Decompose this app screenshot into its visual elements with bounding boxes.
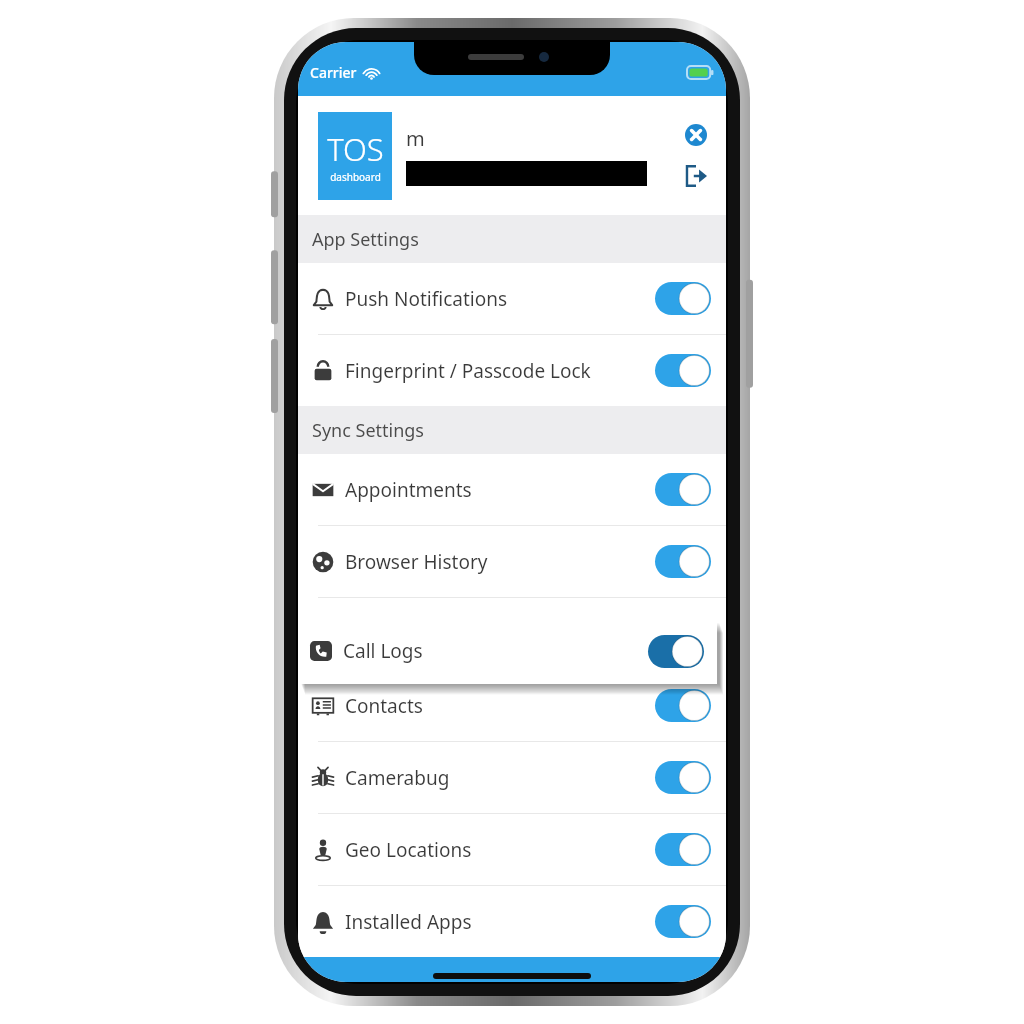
button[interactable]: Log out	[680, 160, 712, 192]
staticText: Call Logs	[343, 638, 423, 664]
staticText: Sync Settings	[312, 418, 424, 443]
button[interactable]: Toggle	[655, 354, 711, 387]
button[interactable]: Contacts	[298, 670, 726, 741]
button[interactable]: Close	[680, 119, 712, 151]
button[interactable]: Geo Locations	[298, 814, 726, 885]
button[interactable]: Push Notifications	[298, 263, 726, 334]
button[interactable]: Toggle	[655, 282, 711, 315]
staticText: Fingerprint / Passcode Lock	[345, 358, 591, 384]
staticText: dashboard	[330, 170, 381, 184]
staticText: TOS	[327, 128, 384, 170]
staticText: App Settings	[312, 227, 419, 252]
button[interactable]: Toggle	[655, 761, 711, 794]
button[interactable]: Camerabug	[298, 742, 726, 813]
button[interactable]: Toggle	[655, 545, 711, 578]
staticText: Camerabug	[345, 765, 450, 791]
button[interactable]: Toggle	[655, 689, 711, 722]
button[interactable]: Fingerprint / Passcode Lock	[298, 335, 726, 406]
staticText: Installed Apps	[345, 909, 472, 935]
button[interactable]: Appointments	[298, 454, 726, 525]
button[interactable]: Installed Apps	[298, 886, 726, 957]
button[interactable]: Call Logs	[298, 618, 717, 684]
staticText: Contacts	[345, 693, 423, 719]
staticText: Geo Locations	[345, 837, 472, 863]
staticText: Push Notifications	[345, 286, 508, 312]
staticText: m	[406, 125, 425, 152]
button[interactable]: Toggle	[655, 905, 711, 938]
button[interactable]: Toggle	[655, 473, 711, 506]
staticText: Browser History	[345, 549, 488, 575]
button[interactable]: Toggle	[655, 833, 711, 866]
button[interactable]: Browser History	[298, 526, 726, 597]
staticText: Carrier	[310, 63, 357, 82]
staticText: Appointments	[345, 477, 472, 503]
button[interactable]: Toggle	[648, 635, 704, 668]
